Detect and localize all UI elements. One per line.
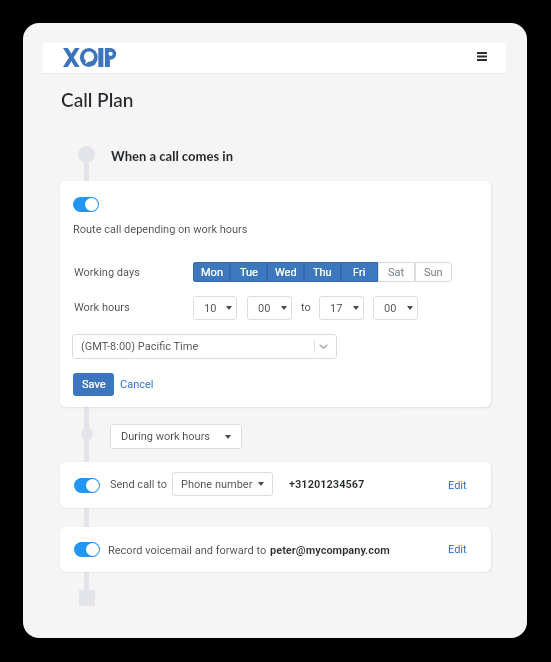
staticText: (GMT-8:00) Pacific Time — [81, 340, 199, 353]
button[interactable]: Send call to — [74, 478, 100, 493]
staticText: +31201234567 — [289, 478, 365, 491]
button[interactable]: Phone number — [172, 472, 273, 496]
button[interactable]: 00 — [373, 296, 418, 320]
button[interactable]: Record voicemail — [74, 542, 100, 557]
button[interactable]: Mon — [193, 262, 230, 282]
staticText: Mon — [201, 266, 223, 279]
button[interactable]: Thu — [304, 262, 341, 282]
button[interactable]: Tue — [230, 262, 267, 282]
button[interactable]: Edit — [441, 474, 473, 496]
button[interactable]: (GMT-8:00) Pacific Time — [72, 334, 337, 359]
staticText: peter@mycompany.com — [270, 544, 390, 557]
staticText: Sat — [388, 266, 405, 279]
button[interactable]: Save — [73, 373, 114, 396]
staticText: 00 — [258, 302, 271, 315]
staticText: Thu — [313, 266, 332, 279]
button[interactable]: Wed — [267, 262, 304, 282]
staticText: 17 — [330, 302, 343, 315]
button[interactable]: Fri — [341, 262, 378, 282]
staticText: Save — [82, 378, 106, 391]
button[interactable]: 00 — [247, 296, 292, 320]
staticText: Sun — [424, 266, 443, 279]
other: XOIP logo — [63, 48, 116, 67]
staticText: Tue — [240, 266, 258, 279]
staticText: Wed — [275, 266, 297, 279]
staticText: Phone number — [181, 478, 253, 491]
button[interactable]: 10 — [193, 296, 237, 320]
button[interactable]: Edit — [441, 538, 473, 560]
button[interactable]: Sat — [378, 262, 415, 282]
staticText: Send call to — [110, 478, 167, 491]
button[interactable]: Cancel — [118, 373, 156, 396]
staticText: Edit — [448, 479, 467, 492]
staticText: 10 — [204, 302, 217, 315]
staticText: Cancel — [120, 378, 154, 391]
button[interactable]: During work hours — [110, 424, 242, 449]
staticText: 00 — [384, 302, 397, 315]
staticText: When a call comes in — [111, 148, 234, 164]
staticText: Route call depending on work hours — [73, 223, 248, 236]
staticText: Edit — [448, 543, 467, 556]
staticText: Fri — [353, 266, 366, 279]
staticText: Working days — [74, 266, 140, 279]
staticText: During work hours — [121, 430, 211, 443]
button[interactable]: Sun — [415, 262, 452, 282]
staticText: Work hours — [74, 301, 130, 314]
staticText: Call Plan — [61, 88, 134, 111]
button[interactable]: Menu — [471, 47, 492, 66]
button[interactable]: Route call depending on work hours — [73, 197, 99, 212]
button[interactable]: 17 — [319, 296, 364, 320]
staticText: to — [301, 301, 311, 314]
staticText: Record voicemail and forward to — [108, 544, 267, 557]
